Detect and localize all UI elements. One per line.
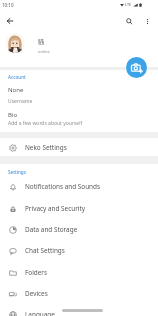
- staticText: Add a few words about yourself: [8, 120, 83, 127]
- staticText: Privacy and Security: [25, 204, 86, 213]
- button[interactable]: Language: [0, 304, 158, 316]
- staticText: Bio: [8, 111, 18, 119]
- button[interactable]: None: [0, 82, 158, 104]
- staticText: Devices: [25, 289, 48, 298]
- button[interactable]: Neko Settings: [0, 137, 158, 158]
- staticText: 10:10: [2, 2, 14, 8]
- staticText: Language: [25, 310, 55, 316]
- staticText: Chat Settings: [25, 246, 65, 255]
- staticText: 猫: [38, 38, 45, 46]
- button[interactable]: Chat Settings: [0, 240, 158, 261]
- staticText: None: [8, 86, 24, 94]
- button[interactable]: Back: [1, 12, 19, 30]
- staticText: Neko Settings: [25, 143, 67, 152]
- staticText: Username: [8, 98, 33, 105]
- button[interactable]: Devices: [0, 283, 158, 304]
- staticText: Notifications and Sounds: [25, 182, 101, 191]
- button[interactable]: 猫: [0, 29, 158, 57]
- staticText: Folders: [25, 268, 48, 277]
- staticText: Settings: [8, 169, 26, 175]
- button[interactable]: Folders: [0, 262, 158, 283]
- button[interactable]: Bio: [0, 107, 158, 129]
- staticText: LTE: [125, 2, 132, 7]
- button[interactable]: Search: [120, 12, 138, 30]
- staticText: Data and Storage: [25, 225, 78, 234]
- staticText: online: [38, 49, 50, 54]
- staticText: Account: [8, 74, 26, 80]
- button[interactable]: Data and Storage: [0, 219, 158, 240]
- button[interactable]: More options: [138, 12, 156, 30]
- button[interactable]: Privacy and Security: [0, 198, 158, 219]
- button[interactable]: Change profile photo: [126, 57, 147, 78]
- button[interactable]: Notifications and Sounds: [0, 176, 158, 197]
